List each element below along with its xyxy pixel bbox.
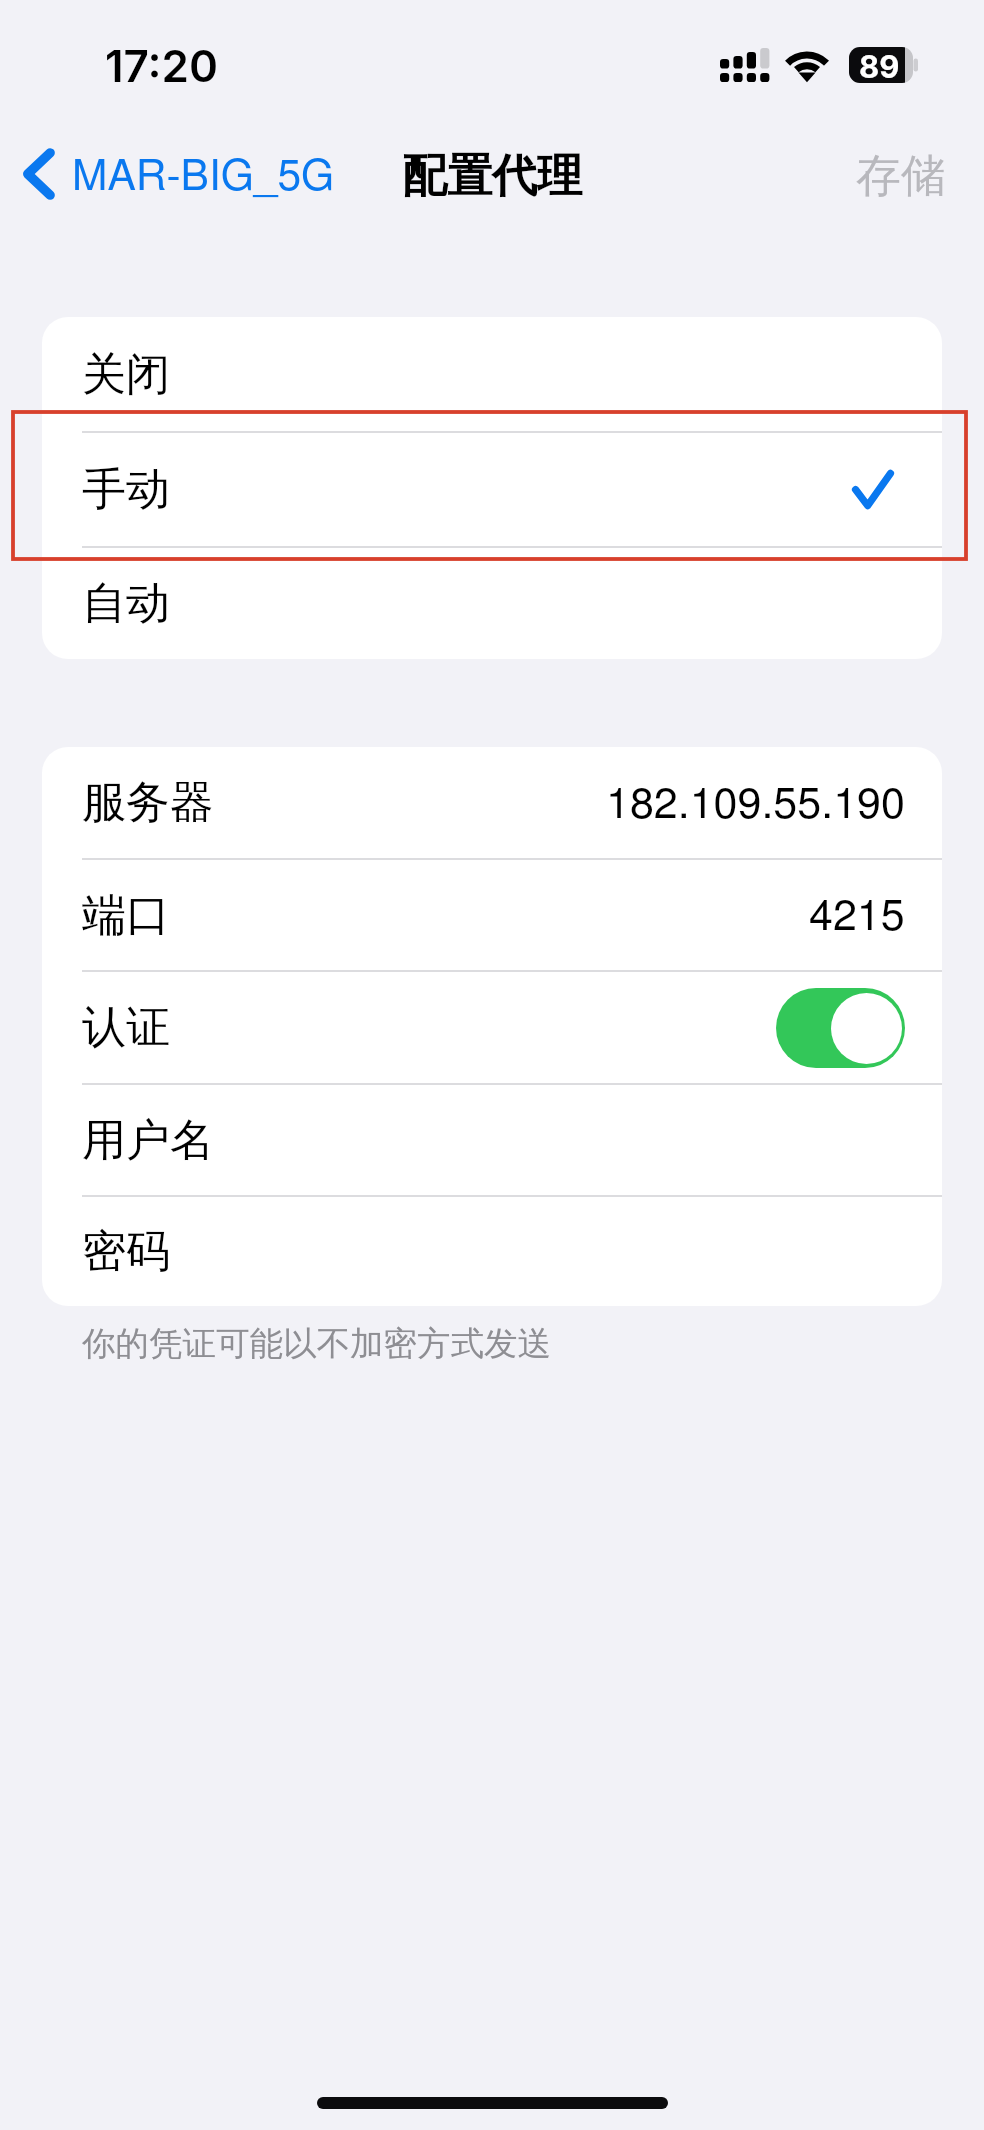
button[interactable]: 存储 — [856, 138, 984, 215]
button[interactable]: MAR-BIG_5G — [0, 136, 349, 217]
button[interactable]: 服务器 — [42, 747, 942, 858]
button[interactable]: 认证 — [42, 972, 942, 1083]
staticText: 配置代理 — [402, 148, 582, 205]
staticText: MAR-BIG_5G — [72, 141, 335, 202]
staticText: 手动 — [82, 462, 170, 517]
staticText: 密码 — [82, 1224, 170, 1279]
staticText: 182.109.55.190 — [606, 769, 905, 831]
staticText: 89 — [859, 48, 900, 84]
button[interactable]: 端口 — [42, 860, 942, 970]
other: 已选中 — [854, 472, 892, 507]
button[interactable]: 用户名 — [42, 1085, 942, 1195]
button[interactable]: 手动 — [42, 433, 942, 546]
staticText: 用户名 — [82, 1113, 214, 1168]
button[interactable]: 认证 — [776, 988, 905, 1068]
staticText: 端口 — [82, 888, 170, 943]
staticText: 你的凭证可能以不加密方式发送 — [82, 1323, 551, 1365]
staticText: 认证 — [82, 1000, 170, 1055]
staticText: 服务器 — [82, 775, 214, 830]
staticText: 4215 — [809, 881, 905, 943]
staticText: 关闭 — [82, 347, 170, 402]
staticText: 自动 — [82, 576, 170, 631]
staticText: 17:20 — [105, 39, 218, 92]
button[interactable]: 自动 — [42, 548, 942, 659]
button[interactable]: 密码 — [42, 1197, 942, 1306]
button[interactable]: 关闭 — [42, 317, 942, 431]
